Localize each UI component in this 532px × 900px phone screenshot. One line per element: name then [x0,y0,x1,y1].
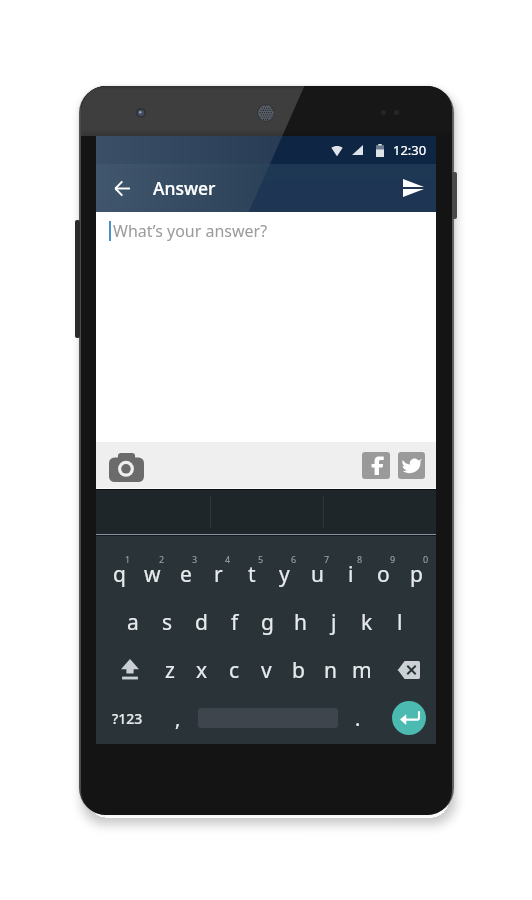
staticText: 9 [390,553,396,565]
button[interactable]: 3 [169,550,202,598]
staticText: 6 [291,553,297,565]
button[interactable]: h [284,598,317,646]
button[interactable]: m [346,646,378,694]
staticText: i [348,560,354,589]
button[interactable]: n [314,646,346,694]
button[interactable]: a [116,598,150,646]
button[interactable]: Space [198,694,338,742]
button[interactable]: 1 [102,550,136,598]
button[interactable]: z [153,646,186,694]
button[interactable]: Backspace [378,646,436,694]
button[interactable]: , [158,694,198,742]
button[interactable]: c [218,646,250,694]
button[interactable]: Enter [378,694,436,742]
staticText: n [324,656,337,685]
staticText: m [352,656,372,685]
staticText: w [144,560,161,589]
button[interactable]: . [338,694,378,742]
button[interactable]: 2 [136,550,169,598]
button[interactable]: Share on Twitter [398,452,425,479]
button[interactable]: Send [391,164,436,212]
staticText: 0 [423,553,429,565]
staticText: ?123 [112,709,143,728]
button[interactable]: j [317,598,350,646]
button[interactable]: 4 [202,550,235,598]
button[interactable]: 0 [400,550,433,598]
staticText: r [214,560,223,589]
button[interactable]: 9 [367,550,400,598]
staticText: o [377,560,390,589]
staticText: b [292,656,305,685]
staticText: g [261,608,274,637]
button[interactable]: x [186,646,218,694]
button[interactable]: g [251,598,284,646]
staticText: Answer [153,176,216,200]
button[interactable]: Shift [96,646,153,694]
staticText: e [180,560,192,589]
staticText: , [175,705,181,732]
staticText: q [113,560,126,589]
staticText: 4 [225,553,231,565]
button[interactable]: s [150,598,184,646]
staticText: What’s your answer? [113,220,268,242]
button[interactable]: 8 [334,550,367,598]
button[interactable]: 7 [301,550,334,598]
staticText: a [127,608,139,637]
staticText: d [195,608,208,637]
staticText: v [261,656,272,685]
staticText: j [331,608,337,637]
button[interactable]: Back [96,164,147,212]
button[interactable]: Share on Facebook [362,452,390,479]
button[interactable]: k [350,598,383,646]
staticText: y [279,560,290,589]
staticText: 12:30 [393,141,427,159]
staticText: u [311,560,324,589]
button[interactable]: f [218,598,251,646]
staticText: l [397,608,403,637]
staticText: z [165,656,175,685]
staticText: t [248,560,256,589]
staticText: p [410,560,423,589]
staticText: h [294,608,307,637]
button[interactable]: d [184,598,218,646]
button[interactable]: 6 [268,550,301,598]
button[interactable]: 5 [235,550,268,598]
staticText: x [196,656,208,685]
button[interactable]: l [383,598,416,646]
button[interactable]: b [282,646,314,694]
button[interactable]: ?123 [96,694,158,742]
staticText: 5 [258,553,264,565]
button[interactable]: Take photo [108,452,144,482]
staticText: k [361,608,373,637]
staticText: . [355,705,361,732]
staticText: 2 [159,553,165,565]
staticText: 7 [324,553,330,565]
staticText: 3 [192,553,198,565]
staticText: c [229,656,240,685]
button[interactable]: v [250,646,282,694]
staticText: f [231,608,239,637]
staticText: 8 [357,553,363,565]
staticText: 1 [125,553,131,565]
staticText: s [162,608,173,637]
